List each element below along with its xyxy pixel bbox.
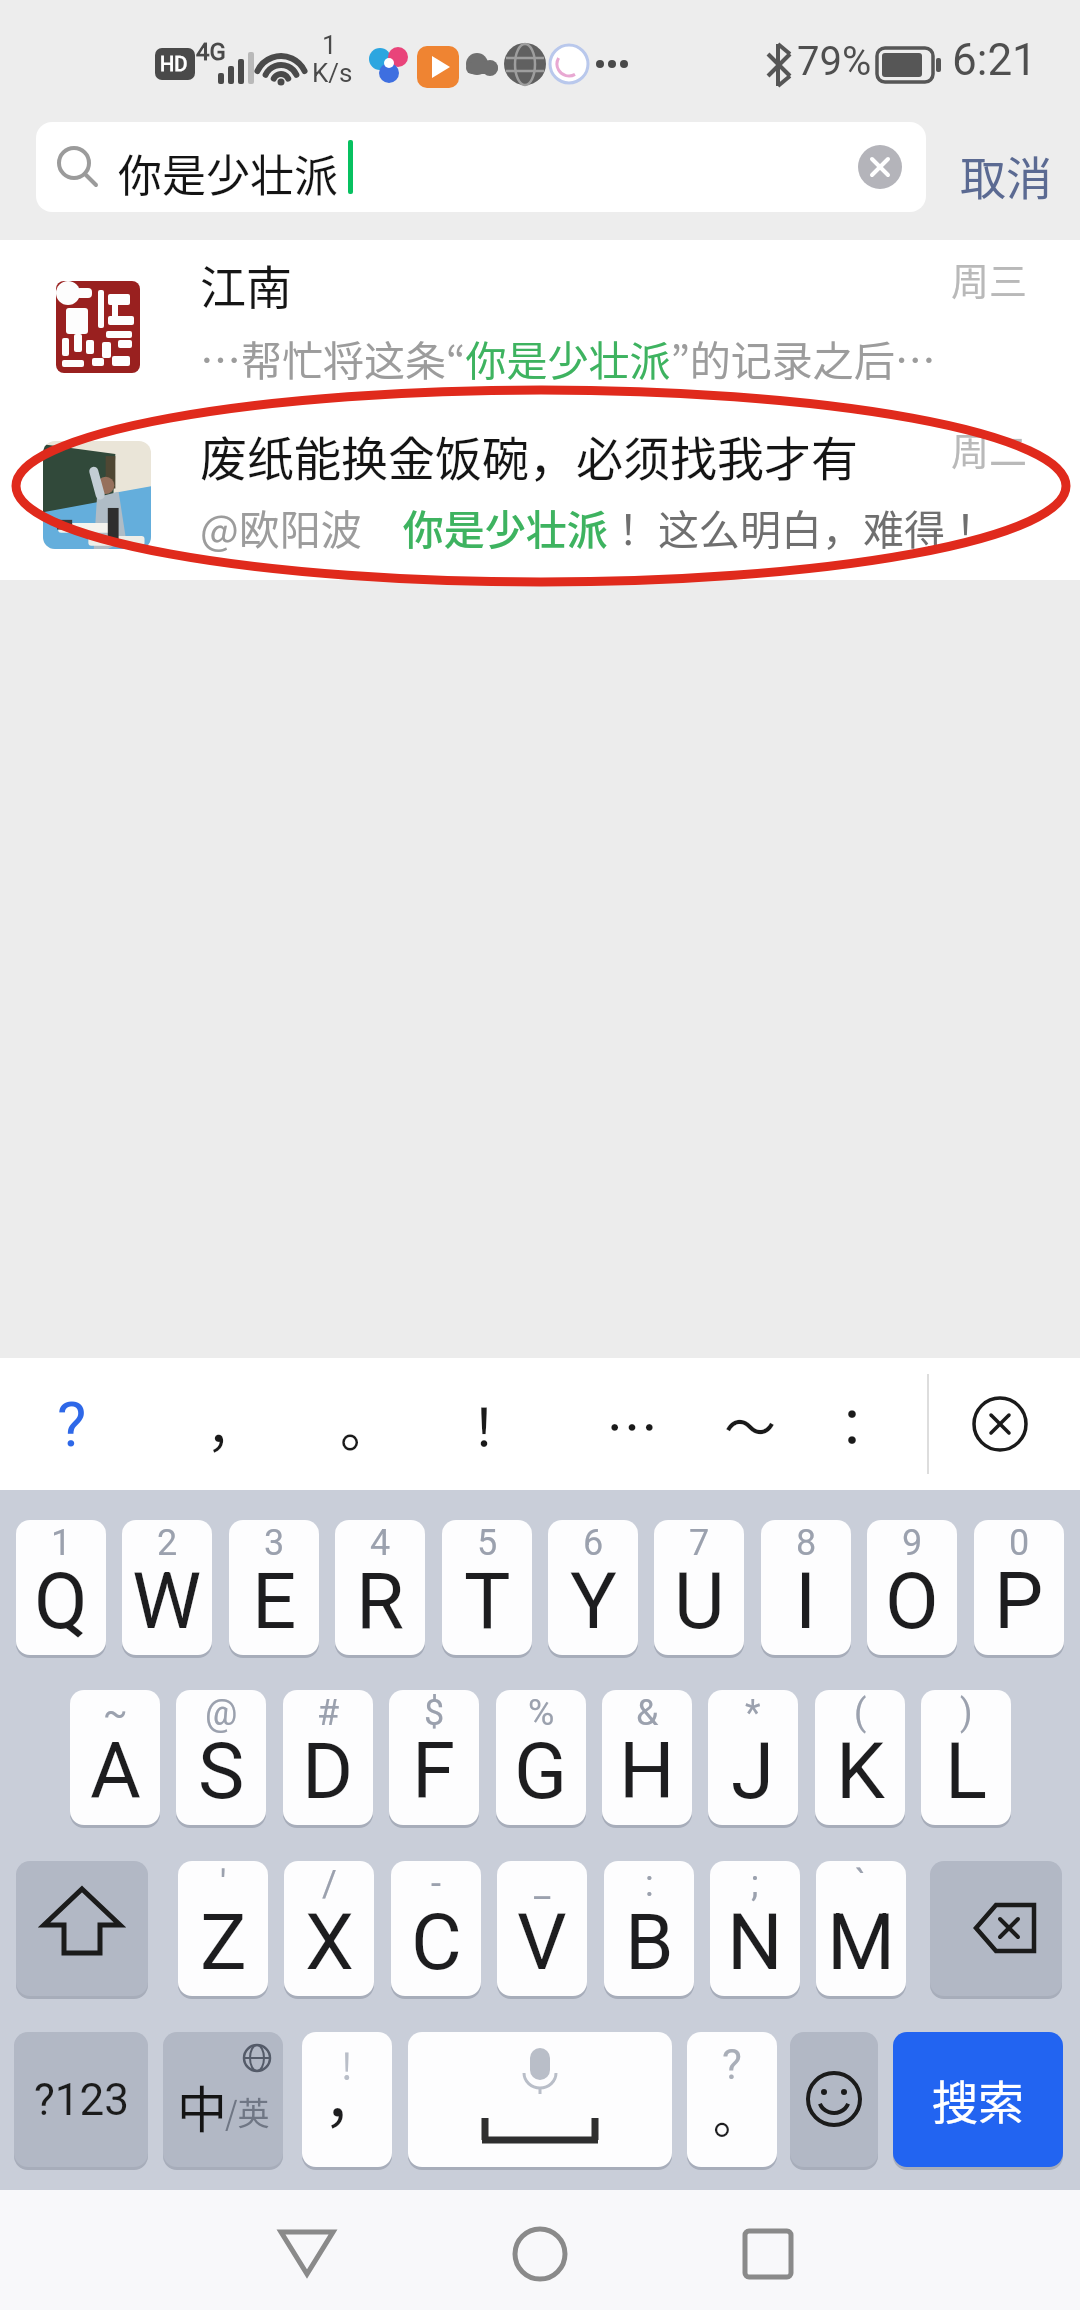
staticText: X [305, 1897, 354, 1988]
button[interactable]: 9 [867, 1520, 957, 1655]
staticText: ! [341, 2038, 353, 2090]
button[interactable]: 6 [548, 1520, 638, 1655]
button[interactable] [930, 1861, 1062, 1996]
staticText: H [619, 1726, 675, 1817]
button[interactable]: ， [192, 1358, 272, 1490]
staticText: K/s [312, 58, 353, 88]
staticText: F [412, 1726, 456, 1817]
button[interactable] [731, 2220, 805, 2290]
staticText: ` [855, 1863, 867, 1905]
staticText: K [836, 1726, 885, 1817]
staticText: E [252, 1556, 297, 1647]
button[interactable]: 0 [974, 1520, 1064, 1655]
staticText: % [528, 1692, 555, 1734]
staticText: A [90, 1726, 141, 1817]
button[interactable] [16, 1861, 148, 1996]
button[interactable]: 4 [335, 1520, 425, 1655]
button[interactable]: - [391, 1861, 481, 1996]
button[interactable]: ` [816, 1861, 906, 1996]
staticText: ; [751, 1863, 759, 1905]
staticText: 周二 [951, 421, 1028, 476]
button[interactable]: ( [815, 1690, 905, 1825]
button[interactable]: 5 [442, 1520, 532, 1655]
staticText: ！ [458, 1387, 511, 1462]
staticText: 废纸能换金饭碗，必须找我才有 [200, 421, 858, 489]
button[interactable]: @ [176, 1690, 266, 1825]
staticText: - [431, 1863, 441, 1905]
button[interactable]: … [592, 1358, 672, 1490]
button[interactable] [790, 2032, 878, 2167]
staticText: ～ [724, 1387, 777, 1462]
button[interactable]: 2 [122, 1520, 212, 1655]
button[interactable]: 8 [761, 1520, 851, 1655]
button[interactable]: _ [497, 1861, 587, 1996]
staticText: 3 [264, 1522, 285, 1564]
staticText: @ [205, 1692, 238, 1734]
staticText: U [674, 1556, 725, 1647]
button[interactable]: 中 [163, 2032, 283, 2167]
button[interactable]: ? [687, 2032, 777, 2167]
staticText: T [464, 1556, 511, 1647]
staticText: 1 [51, 1522, 72, 1564]
button[interactable]: / [284, 1861, 374, 1996]
button[interactable]: 你是少壮派 [36, 122, 926, 212]
button[interactable]: ? [40, 1374, 104, 1474]
staticText: 。 [713, 2080, 759, 2147]
button[interactable] [503, 2220, 577, 2290]
staticText: 9 [902, 1522, 923, 1564]
staticText: O [885, 1556, 939, 1647]
button[interactable]: ! [302, 2032, 392, 2167]
staticText: 6:21 [952, 34, 1037, 86]
button[interactable]: ： [812, 1358, 892, 1490]
button[interactable]: ！ [444, 1358, 524, 1490]
button[interactable]: 。 [326, 1358, 406, 1490]
button[interactable]: ～ [710, 1358, 790, 1490]
staticText: D [302, 1726, 354, 1817]
staticText: P [994, 1556, 1044, 1647]
button[interactable]: ) [921, 1690, 1011, 1825]
staticText: 搜索 [932, 2066, 1024, 2133]
staticText: ? [722, 2040, 742, 2089]
staticText: G [514, 1726, 568, 1817]
staticText: 江南 [200, 251, 292, 318]
staticText: ~ [103, 1692, 128, 1734]
staticText: Y [570, 1556, 617, 1647]
staticText: ， [323, 2052, 383, 2139]
button[interactable]: $ [389, 1690, 479, 1825]
staticText: & [636, 1692, 659, 1734]
button[interactable]: : [604, 1861, 694, 1996]
button[interactable]: 搜索 [893, 2032, 1063, 2167]
staticText: 79% [797, 38, 872, 85]
staticText: I [795, 1556, 817, 1647]
button[interactable]: 7 [654, 1520, 744, 1655]
button[interactable]: 取消 [960, 142, 1052, 209]
staticText: 周三 [951, 251, 1028, 306]
staticText: S [198, 1726, 245, 1817]
staticText: # [317, 1692, 340, 1734]
button[interactable]: # [283, 1690, 373, 1825]
button[interactable]: 江南 [0, 240, 1080, 410]
button[interactable] [960, 1374, 1040, 1474]
button[interactable]: ; [710, 1861, 800, 1996]
staticText: Z [200, 1897, 247, 1988]
button[interactable]: ~ [70, 1690, 160, 1825]
button[interactable]: 3 [229, 1520, 319, 1655]
button[interactable]: 废纸能换金饭碗，必须找我才有 [0, 410, 1080, 580]
staticText: L [945, 1726, 988, 1817]
button[interactable]: 1 [16, 1520, 106, 1655]
button[interactable]: ' [178, 1861, 268, 1996]
staticText: Q [34, 1556, 88, 1647]
button[interactable]: * [708, 1690, 798, 1825]
staticText: _ [534, 1863, 551, 1905]
staticText: HD [160, 52, 188, 75]
button[interactable] [408, 2032, 672, 2167]
staticText: W [132, 1556, 202, 1647]
button[interactable] [270, 2220, 344, 2290]
button[interactable]: & [602, 1690, 692, 1825]
staticText: 取消 [960, 142, 1052, 209]
button[interactable]: % [496, 1690, 586, 1825]
staticText: 。 [340, 1387, 393, 1462]
button[interactable]: ?123 [14, 2032, 148, 2167]
staticText: R [356, 1556, 405, 1647]
staticText: 8 [796, 1522, 817, 1564]
